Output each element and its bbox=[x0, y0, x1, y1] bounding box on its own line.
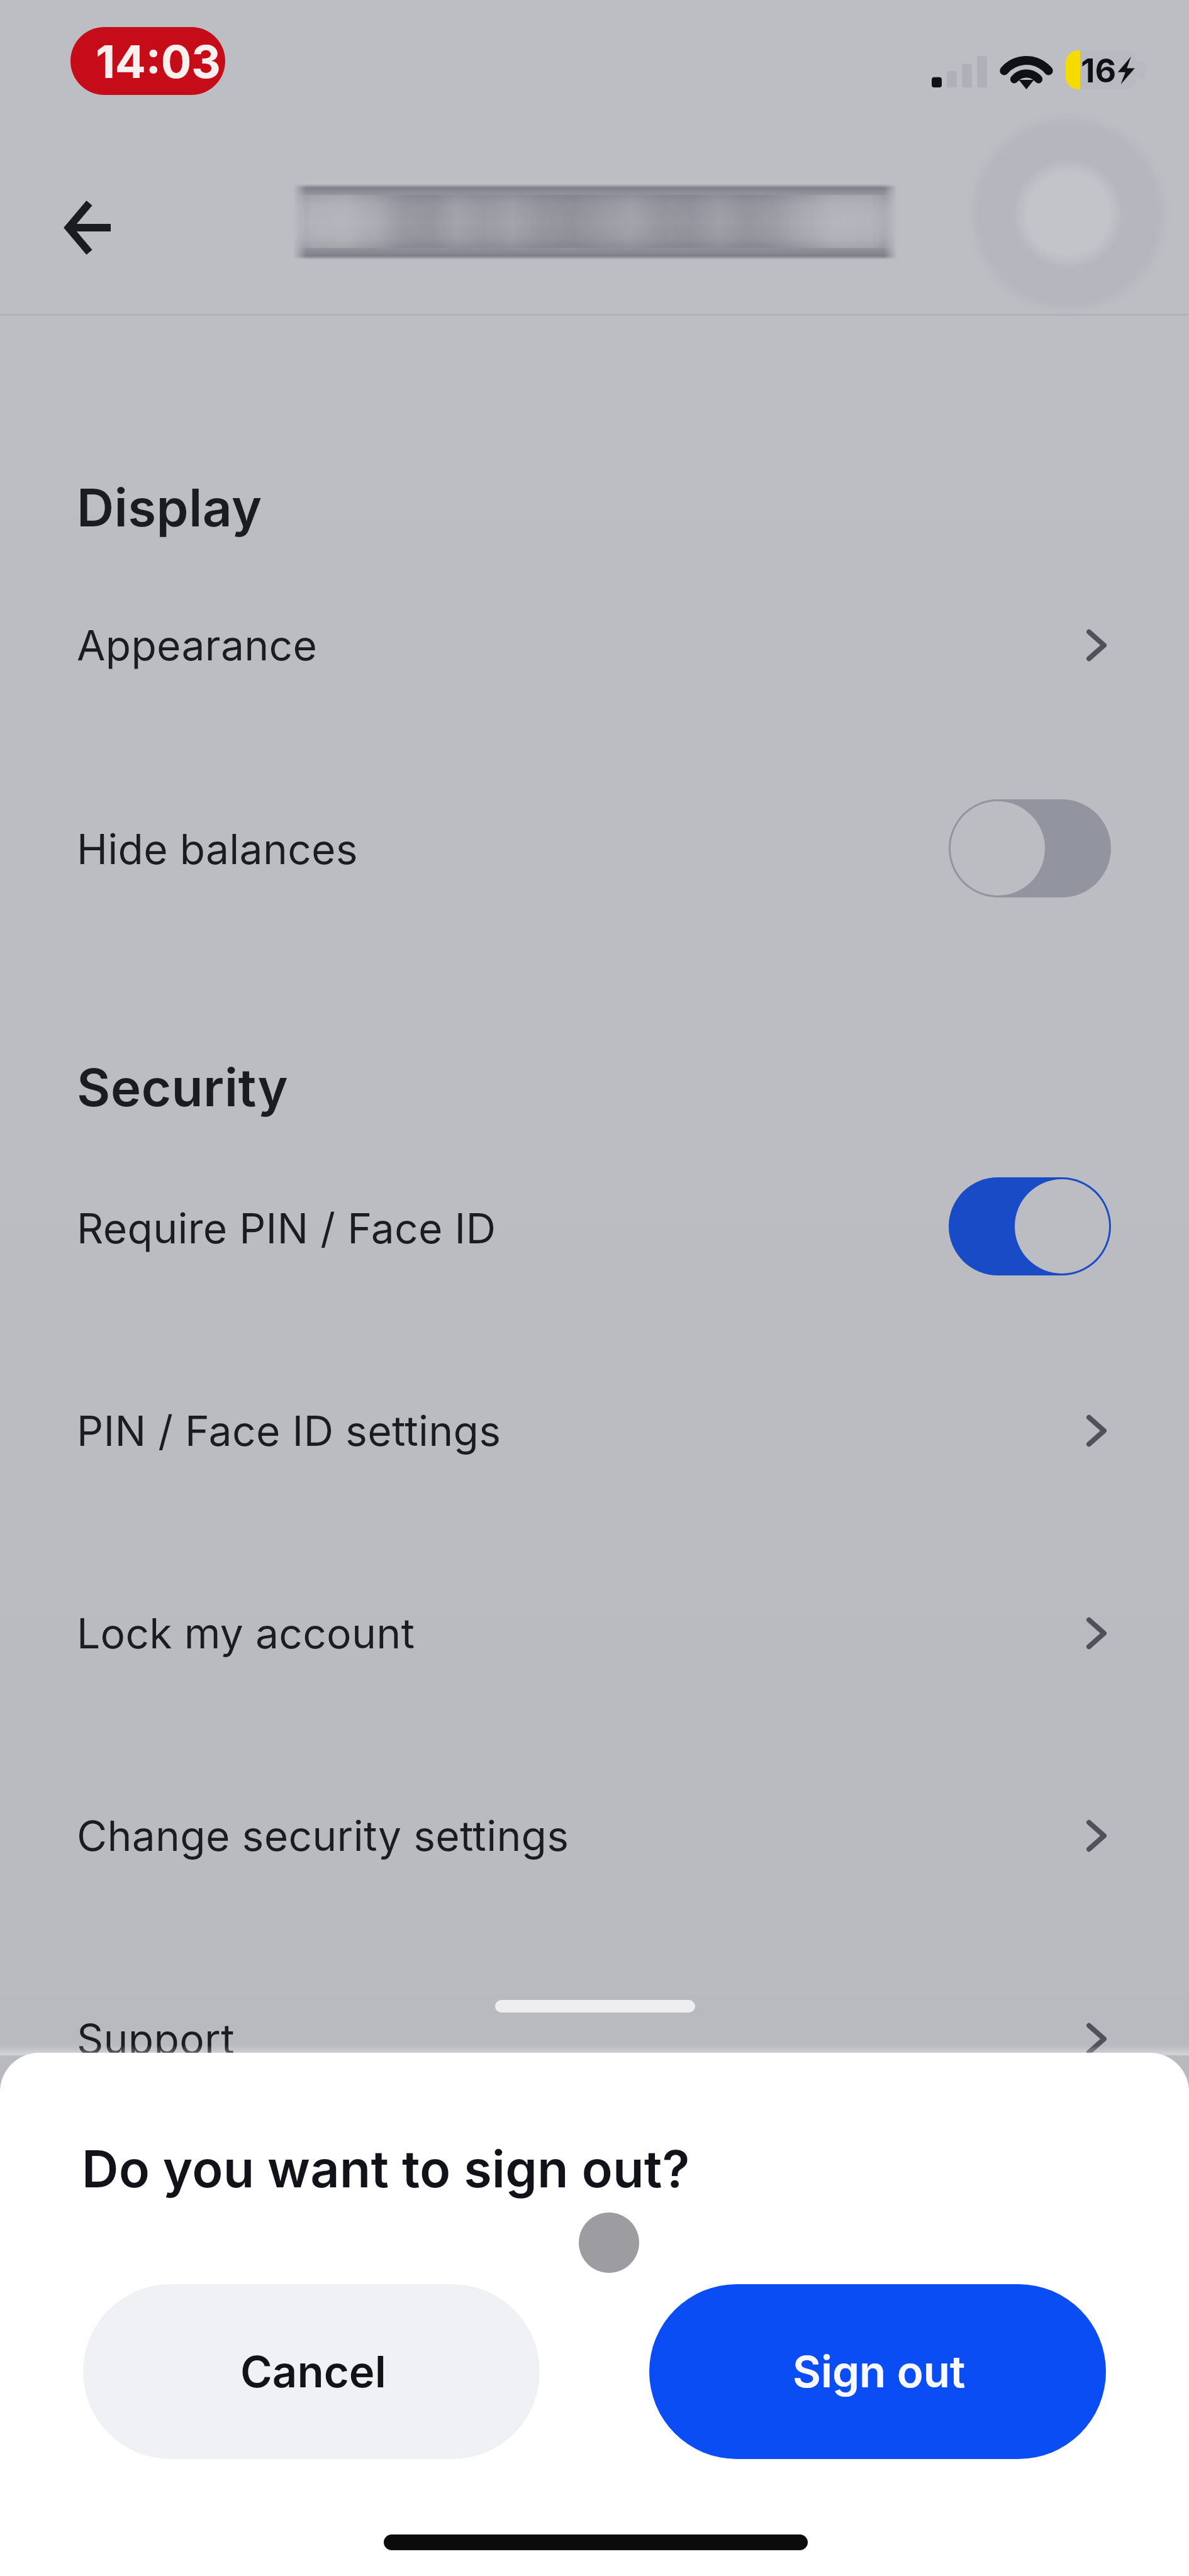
staticText: Appearance bbox=[77, 620, 318, 670]
button[interactable] bbox=[949, 1177, 1111, 1275]
button[interactable]: Hide balances bbox=[0, 789, 1189, 902]
staticText: Support bbox=[77, 2014, 235, 2064]
button[interactable]: Lock my account bbox=[0, 1580, 1189, 1685]
button[interactable]: Require PIN / Face ID bbox=[0, 1167, 1189, 1280]
staticText: Security bbox=[77, 1057, 288, 1119]
button[interactable]: PIN / Face ID settings bbox=[0, 1377, 1189, 1483]
button[interactable]: Appearance bbox=[0, 591, 1189, 697]
staticText: 14:03 bbox=[96, 34, 221, 89]
staticText: Display bbox=[77, 477, 262, 539]
staticText: Lock my account bbox=[77, 1608, 415, 1658]
button[interactable] bbox=[949, 799, 1111, 897]
button[interactable]: Drag handle bbox=[453, 1962, 737, 2025]
staticText: Do you want to sign out? bbox=[82, 2138, 690, 2200]
staticText: Require PIN / Face ID bbox=[77, 1203, 496, 1253]
button[interactable]: Profile bbox=[965, 111, 1171, 317]
staticText: 16 bbox=[1081, 51, 1117, 91]
button[interactable]: Change security settings bbox=[0, 1782, 1189, 1888]
staticText: Hide balances bbox=[77, 824, 358, 874]
button[interactable]: Cancel bbox=[83, 2284, 540, 2459]
button[interactable]: Support bbox=[0, 1985, 1189, 2091]
staticText: PIN / Face ID settings bbox=[77, 1406, 501, 1456]
button[interactable]: Sign out bbox=[649, 2284, 1106, 2459]
staticText: Sign out bbox=[793, 2345, 966, 2397]
button[interactable]: Back bbox=[45, 184, 133, 272]
staticText: Change security settings bbox=[77, 1811, 569, 1861]
staticText: Cancel bbox=[240, 2345, 386, 2397]
